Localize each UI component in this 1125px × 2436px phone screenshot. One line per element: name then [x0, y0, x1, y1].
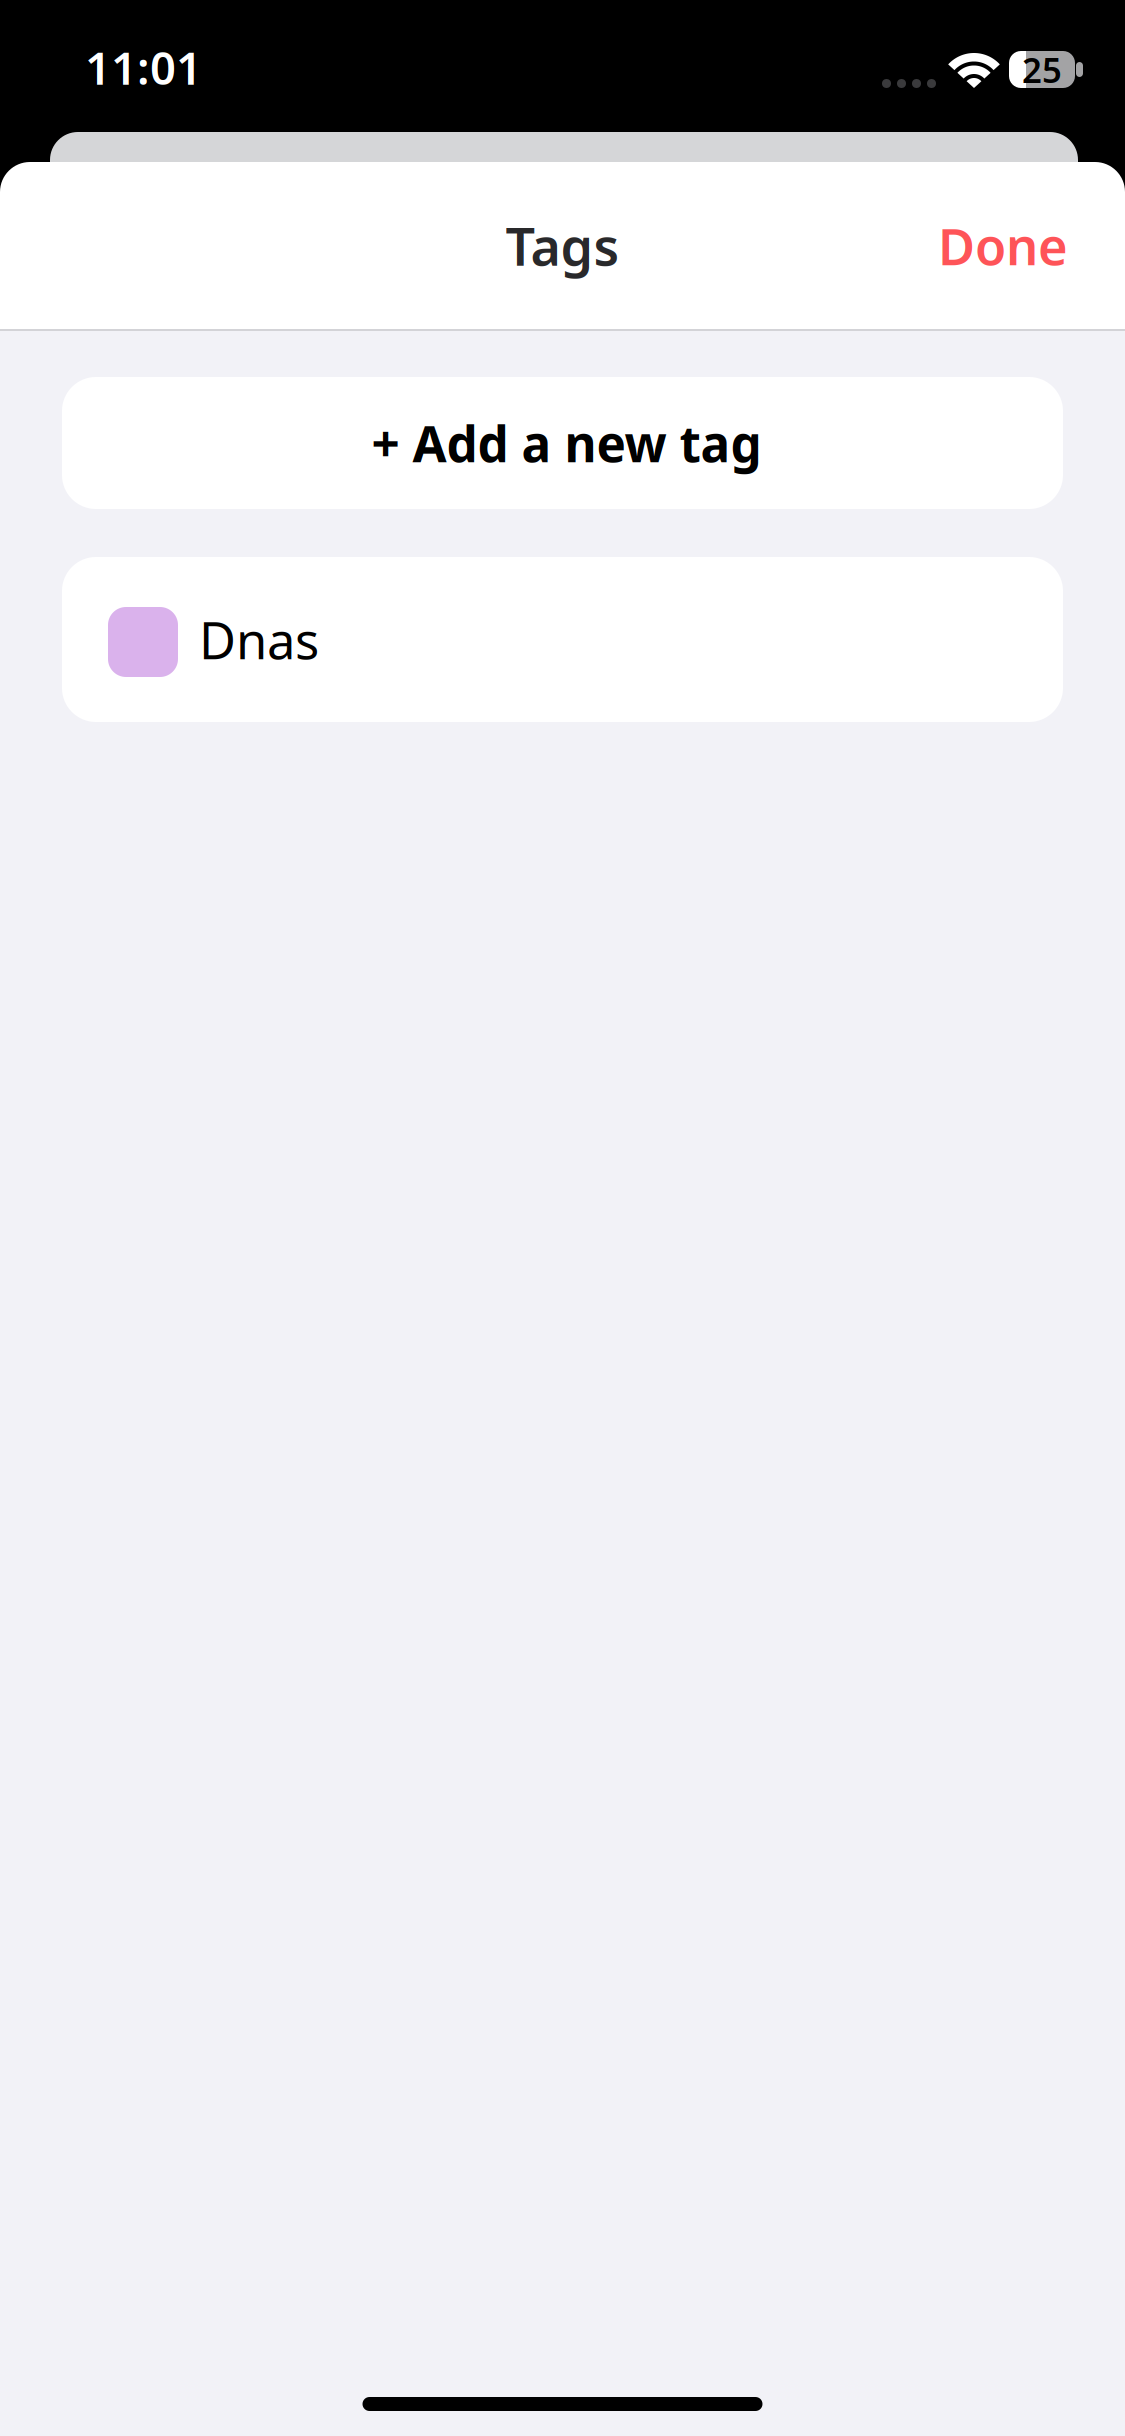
staticText: Dnas — [199, 606, 319, 673]
staticText: Done — [938, 212, 1068, 279]
staticText: Tags — [505, 211, 619, 280]
button[interactable]: Dnas — [62, 557, 1063, 722]
staticText: 25 — [1022, 46, 1062, 92]
staticText: 11:01 — [85, 37, 202, 97]
button[interactable]: Done — [914, 186, 1092, 305]
staticText: + Add a new tag — [371, 410, 761, 476]
button[interactable]: + Add a new tag — [62, 377, 1063, 509]
